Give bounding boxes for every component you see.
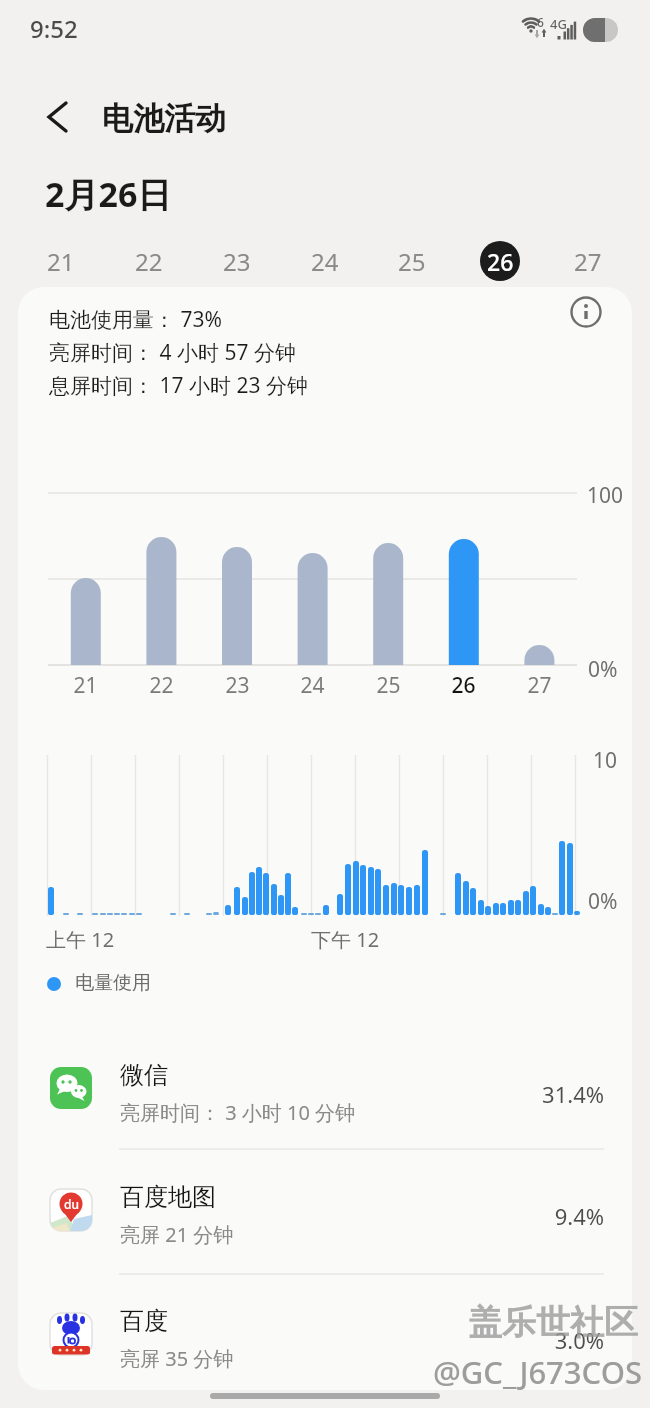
staticText: 3.0% xyxy=(554,1325,604,1355)
staticText: 25 xyxy=(376,671,401,700)
staticText: 亮屏时间： 3 小时 10 分钟 xyxy=(120,1099,356,1126)
staticText: 电量使用 xyxy=(75,971,151,995)
staticText: 23 xyxy=(223,245,251,278)
staticText: 下午 12 xyxy=(311,926,380,953)
staticText: 21 xyxy=(47,245,75,278)
staticText: 4G xyxy=(550,15,567,33)
staticText: 0% xyxy=(588,887,618,916)
button[interactable] xyxy=(568,294,604,330)
staticText: 百度 xyxy=(120,1306,168,1336)
staticText: 百度地图 xyxy=(120,1182,216,1212)
button[interactable]: 25 xyxy=(390,239,434,283)
button[interactable]: 22 xyxy=(127,239,171,283)
staticText: 9.4% xyxy=(554,1201,604,1231)
staticText: @GC_J673COS xyxy=(432,1351,642,1393)
staticText: 24 xyxy=(300,671,325,700)
staticText: 9:52 xyxy=(30,12,78,45)
staticText: 亮屏 35 分钟 xyxy=(120,1345,234,1372)
staticText: 微信 xyxy=(120,1060,168,1090)
button[interactable]: 24 xyxy=(303,239,347,283)
staticText: 26 xyxy=(451,671,476,700)
staticText: 22 xyxy=(135,245,163,278)
staticText: 亮屏 21 分钟 xyxy=(120,1221,234,1248)
staticText: du xyxy=(64,1196,79,1212)
staticText: 27 xyxy=(527,671,552,700)
button[interactable] xyxy=(38,97,78,137)
staticText: 息屏时间： 17 小时 23 分钟 xyxy=(49,371,308,400)
staticText: 21 xyxy=(73,671,98,700)
button[interactable] xyxy=(30,1300,622,1386)
staticText: 电池使用量： 73% xyxy=(49,305,222,334)
staticText: 100 xyxy=(587,481,624,510)
staticText: 10 xyxy=(593,746,618,775)
button[interactable] xyxy=(30,1176,622,1262)
staticText: 0% xyxy=(588,655,618,684)
staticText: 亮屏时间： 4 小时 57 分钟 xyxy=(49,338,296,367)
staticText: 27 xyxy=(574,245,602,278)
button[interactable]: 27 xyxy=(566,239,610,283)
staticText: 23 xyxy=(225,671,250,700)
button[interactable]: 21 xyxy=(39,239,83,283)
button[interactable]: 23 xyxy=(215,239,259,283)
staticText: 24 xyxy=(311,245,339,278)
button[interactable]: 26 xyxy=(480,241,520,281)
staticText: 26 xyxy=(487,246,514,277)
staticText: 电池活动 xyxy=(102,99,226,138)
staticText: 22 xyxy=(149,671,174,700)
staticText: 2月26日 xyxy=(45,171,172,217)
staticText: 31.4% xyxy=(542,1079,604,1109)
staticText: 盖乐世社区 xyxy=(468,1301,638,1344)
staticText: 6 xyxy=(537,14,544,30)
button[interactable] xyxy=(30,1054,622,1140)
staticText: 上午 12 xyxy=(46,926,115,953)
staticText: 25 xyxy=(398,245,426,278)
